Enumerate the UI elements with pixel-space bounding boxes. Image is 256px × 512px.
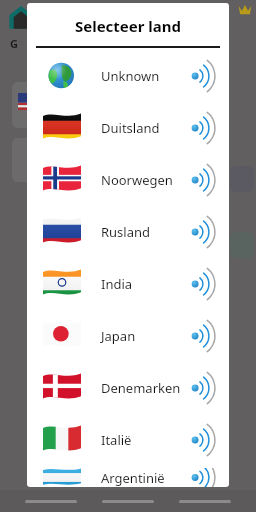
staticText: Argentinië (101, 469, 165, 487)
button[interactable]: Japan (31, 312, 225, 359)
staticText: G (10, 36, 18, 51)
button[interactable]: Duitsland (31, 104, 225, 151)
staticText: Italië (101, 431, 132, 449)
button[interactable]: India (31, 260, 225, 307)
staticText: Japan (101, 327, 136, 345)
button[interactable]: Italië (31, 416, 225, 463)
button[interactable]: Noorwegen (31, 156, 225, 203)
staticText: India (101, 275, 133, 293)
button[interactable]: Rusland (31, 208, 225, 255)
staticText: Selecteer land (27, 16, 229, 36)
button[interactable]: Unknown Server (31, 52, 225, 99)
staticText: Duitsland (101, 119, 160, 137)
staticText: Noorwegen (101, 171, 173, 189)
staticText: Rusland (101, 223, 151, 241)
button[interactable]: Argentinië (31, 468, 225, 487)
staticText: Unknown Server (101, 67, 187, 85)
button[interactable]: Denemarken (31, 364, 225, 411)
staticText: Denemarken (101, 379, 181, 397)
